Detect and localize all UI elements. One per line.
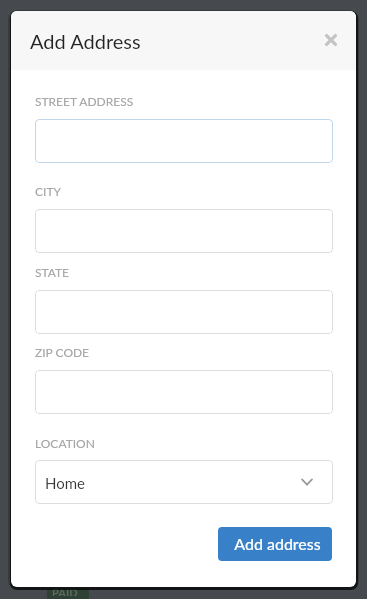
staticText: Add Address xyxy=(30,29,141,53)
staticText: STREET ADDRESS xyxy=(35,94,134,108)
button[interactable]: Add address xyxy=(218,527,332,561)
button[interactable]: Close xyxy=(317,26,345,54)
button[interactable]: Street address xyxy=(35,119,333,163)
button[interactable]: State xyxy=(35,290,333,334)
staticText: LOCATION xyxy=(35,436,95,450)
button[interactable]: Zip code xyxy=(35,370,333,414)
staticText: PAID xyxy=(52,586,78,596)
staticText: Home xyxy=(45,474,85,492)
staticText: Add address xyxy=(234,534,321,553)
staticText: CITY xyxy=(35,184,61,198)
staticText: STATE xyxy=(35,265,70,279)
staticText: ZIP CODE xyxy=(35,345,90,359)
button[interactable]: City xyxy=(35,209,333,253)
button[interactable]: Home xyxy=(35,460,333,504)
